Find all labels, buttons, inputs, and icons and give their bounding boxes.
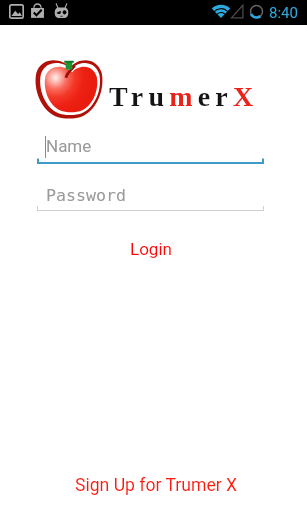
other: Screenshot captured bbox=[9, 4, 24, 19]
staticText: Name bbox=[46, 136, 92, 156]
staticText: Login bbox=[130, 239, 172, 259]
staticText: Password bbox=[46, 186, 126, 205]
button[interactable]: Name bbox=[37, 130, 264, 164]
staticText: 8:40 bbox=[269, 4, 298, 22]
other: Download complete bbox=[30, 3, 45, 19]
button[interactable]: Sign Up for Trumer X bbox=[3, 472, 307, 498]
staticText: TrumerX bbox=[109, 81, 259, 112]
other: No signal bbox=[230, 4, 245, 19]
button[interactable]: Login bbox=[0, 233, 304, 265]
other: Battery bbox=[249, 4, 264, 19]
button[interactable]: Password bbox=[37, 179, 264, 211]
other: System notification bbox=[54, 2, 69, 19]
staticText: Sign Up for Trumer X bbox=[75, 475, 238, 496]
other: Wi-Fi connected bbox=[212, 5, 230, 18]
